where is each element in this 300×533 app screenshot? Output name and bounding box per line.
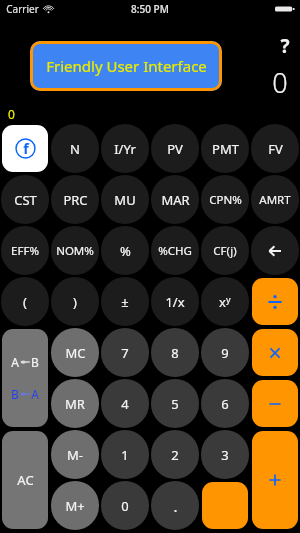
- button[interactable]: Facebook: [2, 125, 48, 172]
- button[interactable]: 3: [201, 430, 249, 479]
- button[interactable]: Backspace: [251, 226, 299, 275]
- staticText: I/Yr: [114, 140, 136, 158]
- staticText: 0: [121, 497, 129, 515]
- button[interactable]: AC: [2, 431, 48, 529]
- button[interactable]: Multiply: [252, 329, 298, 376]
- staticText: ±: [121, 293, 129, 311]
- button[interactable]: 9: [201, 328, 249, 377]
- button[interactable]: 1/x: [151, 277, 199, 326]
- button[interactable]: MC: [51, 328, 99, 377]
- button[interactable]: 8: [151, 328, 199, 377]
- button[interactable]: %: [101, 226, 149, 275]
- button[interactable]: EFF%: [1, 226, 49, 275]
- button[interactable]: CF(j): [201, 226, 249, 275]
- staticText: CST: [14, 191, 37, 209]
- staticText: PV: [167, 140, 183, 158]
- button[interactable]: NOM%: [51, 226, 99, 275]
- staticText: f: [23, 139, 29, 158]
- staticText: AMRT: [259, 192, 291, 208]
- button[interactable]: AMRT: [251, 175, 299, 224]
- staticText: AC: [17, 471, 34, 489]
- staticText: CF(j): [213, 243, 237, 259]
- button[interactable]: M-: [51, 430, 99, 479]
- button[interactable]: Add: [252, 431, 298, 529]
- staticText: B: [11, 386, 19, 402]
- staticText: 1: [121, 446, 129, 464]
- button[interactable]: (: [1, 277, 49, 326]
- button[interactable]: PV: [151, 124, 199, 173]
- button[interactable]: Swap A and B: [2, 329, 48, 427]
- button[interactable]: MR: [51, 379, 99, 428]
- staticText: NOM%: [56, 243, 94, 259]
- staticText: M-: [67, 446, 83, 464]
- button[interactable]: Friendly User Interface: [30, 41, 222, 91]
- button[interactable]: .: [151, 481, 199, 530]
- button[interactable]: CPN%: [201, 175, 249, 224]
- button[interactable]: FV: [251, 124, 299, 173]
- staticText: A: [11, 354, 19, 370]
- staticText: 8:50 PM: [131, 2, 169, 16]
- button[interactable]: 2: [151, 430, 199, 479]
- button[interactable]: 7: [101, 328, 149, 377]
- staticText: %CHG: [158, 243, 192, 259]
- button[interactable]: Subtract: [252, 380, 298, 427]
- button[interactable]: MAR: [151, 175, 199, 224]
- button[interactable]: M+: [51, 481, 99, 530]
- staticText: MAR: [161, 191, 190, 209]
- button[interactable]: ): [51, 277, 99, 326]
- staticText: 7: [121, 344, 129, 362]
- button[interactable]: xy: [201, 277, 249, 326]
- button[interactable]: CST: [1, 175, 49, 224]
- button[interactable]: PMT: [201, 124, 249, 173]
- staticText: CPN%: [209, 192, 242, 208]
- staticText: 8: [171, 344, 179, 362]
- button[interactable]: 6: [201, 379, 249, 428]
- staticText: 6: [221, 395, 229, 413]
- staticText: PRC: [63, 191, 88, 209]
- button[interactable]: 5: [151, 379, 199, 428]
- staticText: EFF%: [11, 243, 39, 259]
- staticText: 5: [171, 395, 179, 413]
- button[interactable]: 4: [101, 379, 149, 428]
- staticText: MU: [114, 191, 136, 209]
- staticText: A: [31, 386, 39, 402]
- button[interactable]: Help: [276, 33, 294, 55]
- button[interactable]: PRC: [51, 175, 99, 224]
- staticText: Friendly User Interface: [46, 56, 207, 76]
- staticText: 0: [8, 106, 15, 122]
- staticText: ): [73, 293, 77, 311]
- staticText: 4: [121, 395, 129, 413]
- button[interactable]: 0: [101, 481, 149, 530]
- staticText: Carrier: [6, 2, 39, 16]
- staticText: ?: [280, 33, 290, 55]
- staticText: 9: [221, 344, 229, 362]
- staticText: xy: [219, 293, 231, 311]
- staticText: .: [173, 496, 178, 516]
- button[interactable]: MU: [101, 175, 149, 224]
- staticText: N: [70, 140, 80, 158]
- staticText: 1/x: [165, 293, 185, 311]
- button[interactable]: 1: [101, 430, 149, 479]
- staticText: %: [120, 242, 131, 260]
- staticText: (: [23, 293, 27, 311]
- button[interactable]: %CHG: [151, 226, 199, 275]
- button[interactable]: I/Yr: [101, 124, 149, 173]
- staticText: M+: [65, 497, 85, 515]
- staticText: 0: [272, 64, 288, 101]
- staticText: FV: [268, 140, 283, 158]
- staticText: 3: [221, 446, 229, 464]
- button[interactable]: Divide: [252, 278, 298, 325]
- button[interactable]: N: [51, 124, 99, 173]
- staticText: MR: [65, 395, 85, 413]
- staticText: B: [31, 354, 39, 370]
- staticText: PMT: [212, 140, 239, 158]
- staticText: MC: [65, 344, 86, 362]
- button[interactable]: ±: [101, 277, 149, 326]
- staticText: 2: [171, 446, 179, 464]
- button[interactable]: Equals: [202, 482, 248, 529]
